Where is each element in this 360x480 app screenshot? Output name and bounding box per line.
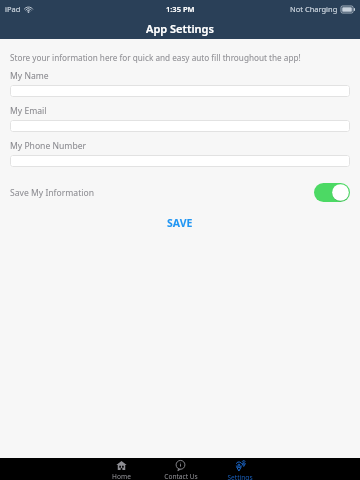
button[interactable]: Contact Us (151, 458, 210, 480)
staticText: Not Charging (290, 4, 338, 14)
button[interactable]: Home (92, 458, 151, 480)
button[interactable] (10, 155, 350, 167)
staticText: 1:35 PM (166, 4, 195, 14)
staticText: My Name (10, 70, 49, 82)
staticText: My Phone Number (10, 140, 87, 152)
staticText: App Settings (146, 21, 214, 36)
staticText: My Email (10, 105, 47, 117)
staticText: SAVE (167, 216, 193, 230)
button[interactable] (10, 120, 350, 132)
button[interactable]: Settings (210, 458, 269, 480)
staticText: Settings (227, 473, 253, 480)
staticText: Save My Information (10, 187, 95, 199)
staticText: Store your information here for quick an… (10, 52, 301, 63)
staticText: iPad (5, 4, 21, 14)
button[interactable]: SAVE (10, 212, 350, 234)
button[interactable]: Save My Information toggle (314, 183, 350, 202)
staticText: Contact Us (164, 472, 198, 480)
button[interactable] (10, 85, 350, 97)
staticText: Home (112, 472, 131, 480)
